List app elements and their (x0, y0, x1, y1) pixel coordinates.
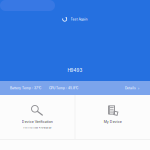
button[interactable]: Battery Temp : 37°C (0, 81, 150, 95)
staticText: Device Verification (22, 120, 53, 124)
staticText: CPU Temp : 45.8°C (49, 86, 78, 90)
staticText: My Device (104, 120, 122, 124)
staticText: H9493 (67, 67, 82, 73)
button[interactable]: Test Again (58, 15, 91, 23)
staticText: Battery Temp : 37°C (10, 86, 41, 90)
staticText: 4/06/2020 (39, 126, 52, 129)
staticText: Test Again (70, 17, 87, 21)
staticText: Verified today (23, 126, 38, 129)
button[interactable]: Device Verification (0, 95, 75, 139)
staticText: Details › (125, 86, 139, 90)
button[interactable]: My Device (75, 95, 150, 139)
